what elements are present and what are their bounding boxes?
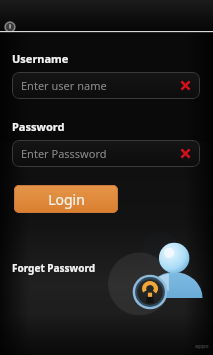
staticText: Enter user name: [21, 78, 180, 93]
staticText: Login: [48, 190, 85, 209]
button[interactable]: Clear: [180, 80, 191, 91]
button[interactable]: Enter Passsword: [12, 140, 200, 167]
staticText: Username: [12, 51, 69, 66]
button[interactable]: Login: [14, 185, 118, 213]
button[interactable]: Enter user name: [12, 72, 200, 99]
button[interactable]: Notification: [4, 21, 16, 33]
button[interactable]: Clear: [180, 148, 191, 159]
staticText: Enter Passsword: [21, 146, 180, 161]
staticText: Password: [12, 119, 65, 134]
staticText: appz: [195, 342, 209, 350]
button[interactable]: Forget Password: [12, 259, 95, 277]
staticText: Forget Password: [12, 261, 95, 275]
